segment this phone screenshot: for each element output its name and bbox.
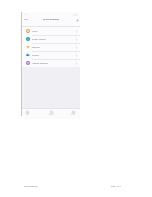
button[interactable]: Photo Library <box>22 35 80 43</box>
button[interactable]: Files <box>19 109 35 118</box>
staticText: 9:41 <box>24 13 28 16</box>
staticText: Edit <box>24 18 29 21</box>
staticText: Photo Library <box>32 38 46 41</box>
button[interactable]: Settings <box>65 109 81 118</box>
button[interactable]: Transfers <box>43 109 59 118</box>
button[interactable]: iCloud <box>22 51 80 59</box>
staticText: FE File Explorer <box>24 185 38 188</box>
staticText: iCloud <box>32 54 39 57</box>
staticText: Page 1 of 7 <box>111 185 121 188</box>
button[interactable]: Local <box>22 27 80 35</box>
button[interactable]: Add <box>74 17 80 23</box>
staticText: Settings <box>70 114 76 116</box>
button[interactable]: Nearby Devices <box>22 59 80 67</box>
staticText: Transfers <box>48 114 55 116</box>
staticText: Files <box>26 114 29 116</box>
staticText: Local <box>32 30 38 33</box>
staticText: Nearby Devices <box>32 62 48 65</box>
button[interactable]: Starred <box>22 43 80 51</box>
staticText: Starred <box>32 46 40 49</box>
staticText: FE File Explorer <box>43 18 60 21</box>
staticText: ▂▄▆ <box>73 13 78 15</box>
button[interactable]: Edit <box>23 17 30 22</box>
